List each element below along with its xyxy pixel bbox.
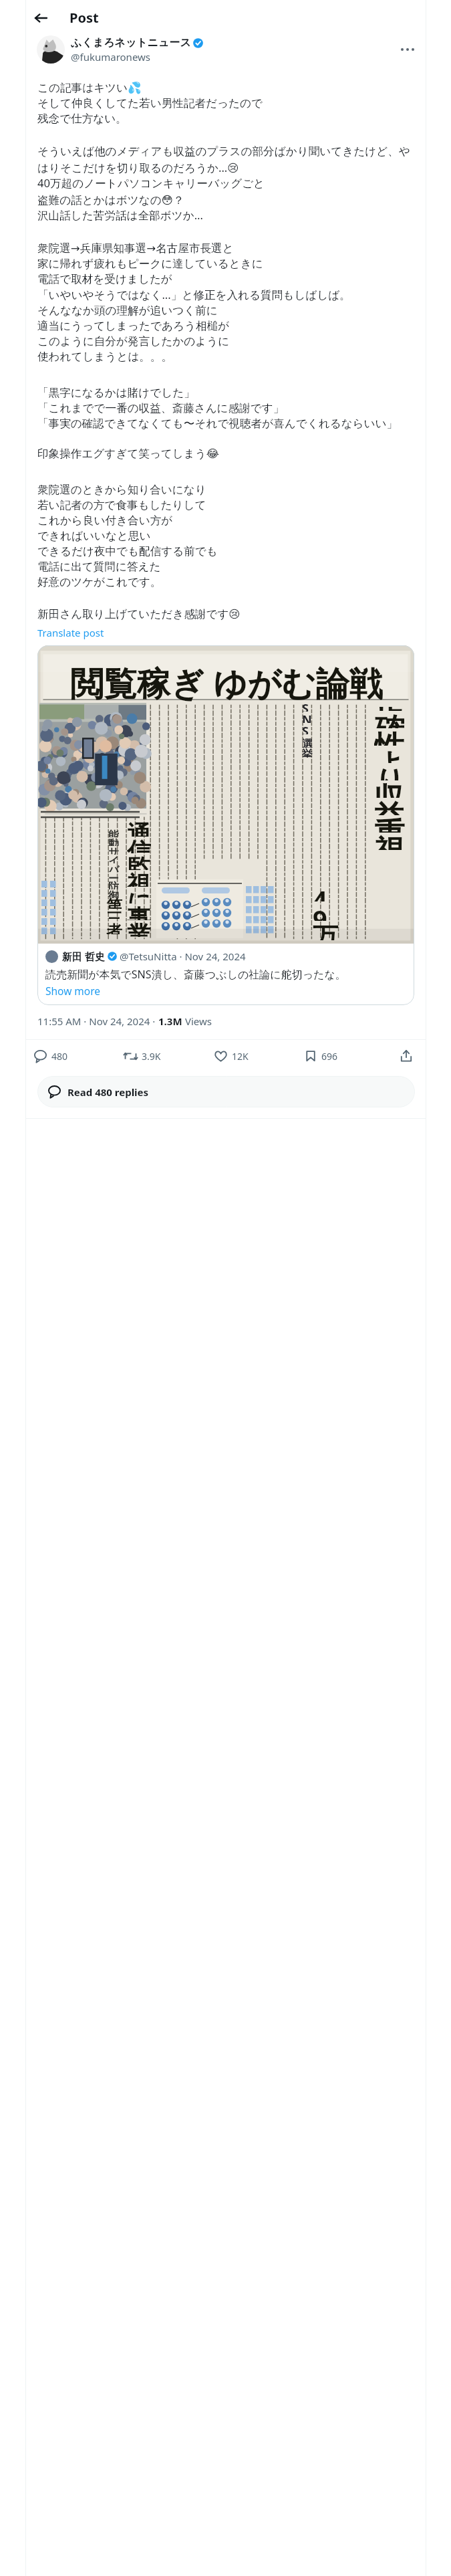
staticText: 印象操作エグすぎて笑ってしまう😂 [37,447,220,461]
staticText: 監 [127,853,151,870]
staticText: 事 [127,903,151,920]
staticText: 12K [232,1050,249,1063]
staticText: 正 [374,707,405,711]
staticText: 新田さん取り上げていただき感謝です😢 [37,607,241,621]
button[interactable]: 12K [210,1042,301,1070]
staticText: 衆院選のときから知り合いになり 若い記者の方で食事もしたりして これから良い付き… [37,483,218,589]
button[interactable]: Share [391,1042,422,1070]
staticText: @TetsuNitta · Nov 24, 2024 [120,950,246,963]
staticText: 信 [127,837,151,853]
button[interactable]: 480 [30,1042,120,1070]
staticText: S [302,700,309,712]
button[interactable]: Translate post [37,626,104,639]
staticText: イ [108,855,120,863]
staticText: 万 [313,921,338,940]
staticText: 9 [313,901,327,921]
staticText: 御 [108,889,119,898]
staticText: の [313,940,339,944]
staticText: @fukumaronews [71,50,151,64]
staticText: 業 [127,920,151,937]
staticText: 「黒字になるかは賭けでした」 「これまでで一番の収益、斎藤さんに感謝です」 「事… [37,386,398,431]
staticText: この記事はキツい💦 そして仲良くしてた若い男性記者だったので 残念で仕方ない。 [37,81,263,126]
staticText: 衆院選→兵庫県知事選→名古屋市長選と 家に帰れず疲れもピークに達しているときに … [37,241,351,364]
staticText: 11:55 AM · Nov 24, 2024 · [37,1014,158,1028]
staticText: ー [108,872,119,881]
staticText: 収 [374,780,405,798]
staticText: 4 [313,882,327,901]
staticText: に [127,887,152,903]
staticText: よ [374,746,406,763]
staticText: 1.3M [158,1014,182,1028]
button[interactable]: Read 480 replies [37,1076,415,1107]
staticText: 選 [302,738,313,748]
staticText: 読売新聞が本気でSNS潰し、斎藤つぶしの社論に舵切ったな。 [45,967,346,982]
staticText: Views [182,1014,212,1028]
staticText: 三 [106,909,122,922]
staticText: S [302,723,309,734]
button[interactable]: Back [29,7,52,29]
staticText: 新田 哲史 [62,950,105,963]
staticText: 性 [374,728,405,746]
staticText: 視 [127,870,151,887]
staticText: 防 [108,881,119,889]
staticText: N [302,712,312,723]
staticText: サ [108,846,120,855]
button[interactable]: Show more [45,984,101,998]
staticText: 者 [106,922,122,934]
staticText: 益 [374,798,405,815]
staticText: 696 [321,1050,338,1063]
button[interactable]: 閲覧稼ぎ ゆがむ論戦 [37,645,414,1005]
staticText: Post [69,9,99,27]
staticText: 480 [51,1050,68,1063]
staticText: Translate post [37,626,104,639]
staticText: 第 [106,896,122,909]
staticText: 視 [374,833,405,850]
staticText: 3.9K [142,1050,161,1063]
button[interactable]: 3.9K [120,1042,210,1070]
staticText: 動 [108,837,119,846]
staticText: Read 480 replies [67,1085,149,1099]
staticText: 挙 [302,748,313,758]
staticText: り [374,763,406,780]
staticText: 重 [374,815,405,833]
staticText: 確 [374,711,405,728]
staticText: ふくまろネットニュース [71,36,191,49]
staticText: 閲覧稼ぎ ゆがむ論戦 [70,660,383,706]
staticText: 能 [108,829,119,837]
button[interactable]: More options [396,38,419,61]
staticText: そういえば他のメディアも収益のプラスの部分ばかり聞いてきたけど、やはりそこだけを… [37,144,414,223]
staticText: バ [108,863,120,872]
button[interactable]: 696 [301,1042,391,1070]
staticText: 通 [127,820,151,837]
